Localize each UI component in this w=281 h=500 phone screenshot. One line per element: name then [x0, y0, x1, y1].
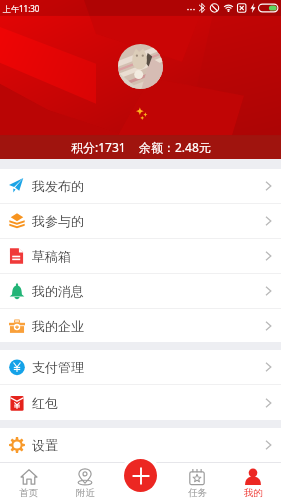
button[interactable]: 我的企业 [0, 309, 281, 342]
staticText: 草稿箱 [32, 248, 71, 264]
staticText: 任务 [188, 487, 207, 499]
button[interactable]: 我的消息 [0, 274, 281, 308]
staticText: 首页 [19, 487, 38, 499]
staticText: 积分:1731 [71, 139, 126, 155]
staticText: 上午11:30 [3, 3, 40, 14]
button[interactable]: 我发布的 [0, 169, 281, 203]
button[interactable]: 支付管理 [0, 350, 281, 384]
staticText: 我发布的 [32, 178, 84, 194]
button[interactable]: 红包 [0, 385, 281, 420]
staticText: 支付管理 [32, 359, 84, 375]
button[interactable]: 我参与的 [0, 204, 281, 238]
button[interactable]: 任务 [169, 462, 225, 500]
staticText: 我的 [244, 487, 263, 499]
staticText: 我的消息 [32, 283, 84, 299]
staticText: 我参与的 [32, 213, 84, 229]
button[interactable]: 首页 [0, 462, 57, 500]
button[interactable]: Profile photo [118, 44, 163, 89]
staticText: 附近 [76, 487, 95, 499]
button[interactable]: 设置 [0, 428, 281, 462]
button[interactable]: Add [124, 459, 157, 492]
staticText: 余额：2.48元 [139, 139, 211, 155]
button[interactable]: 附近 [57, 462, 113, 500]
staticText: 红包 [32, 395, 58, 411]
staticText: 我的企业 [32, 318, 84, 334]
button[interactable]: 我的 [225, 462, 281, 500]
button[interactable]: 草稿箱 [0, 239, 281, 273]
staticText: 设置 [32, 437, 58, 453]
